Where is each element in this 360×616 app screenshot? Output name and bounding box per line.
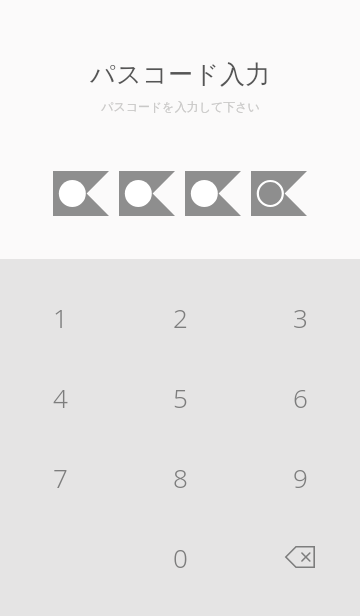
button[interactable]: 2	[140, 277, 220, 357]
staticText: 1	[53, 300, 68, 335]
button[interactable]: 8	[140, 437, 220, 517]
button[interactable]: 5	[140, 357, 220, 437]
button[interactable]: 9	[260, 437, 340, 517]
button[interactable]: 0	[140, 517, 220, 597]
button[interactable]: Entered digit	[53, 171, 109, 216]
staticText: 2	[173, 300, 188, 335]
staticText: パスコード入力	[90, 59, 271, 90]
staticText: 4	[53, 380, 68, 415]
staticText: 7	[53, 460, 68, 495]
staticText: 9	[293, 460, 308, 495]
button[interactable]: 6	[260, 357, 340, 437]
staticText: 0	[173, 540, 188, 575]
staticText: 3	[293, 300, 308, 335]
staticText: 8	[173, 460, 188, 495]
button[interactable]: 1	[20, 277, 100, 357]
staticText: パスコードを入力して下さい	[101, 99, 260, 114]
button[interactable]: 4	[20, 357, 100, 437]
button[interactable]: 3	[260, 277, 340, 357]
button[interactable]: Delete	[260, 517, 340, 597]
button[interactable]: Entered digit	[185, 171, 241, 216]
staticText: 6	[293, 380, 308, 415]
button[interactable]: Entered digit	[119, 171, 175, 216]
staticText: 5	[173, 380, 188, 415]
button[interactable]: 7	[20, 437, 100, 517]
button[interactable]: Empty digit	[251, 171, 307, 216]
